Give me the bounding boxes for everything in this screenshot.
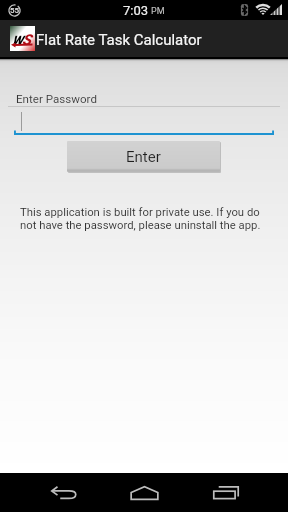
staticText: Enter Password [16, 92, 97, 106]
button[interactable]: Enter [67, 141, 220, 172]
staticText: S [22, 31, 32, 49]
staticText: This application is built for private us… [20, 206, 272, 231]
staticText: W [12, 33, 23, 48]
button[interactable]: W [0, 20, 288, 57]
staticText: 55 [10, 6, 20, 15]
staticText: Enter [126, 148, 161, 166]
staticText: 7:03 [123, 3, 149, 18]
button[interactable]: Recent apps [185, 473, 266, 512]
staticText: PM [151, 6, 165, 17]
button[interactable] [14, 109, 274, 135]
button[interactable]: Home [104, 473, 185, 512]
button[interactable]: Back [23, 473, 104, 512]
staticText: Flat Rate Task Calculator [36, 31, 202, 49]
